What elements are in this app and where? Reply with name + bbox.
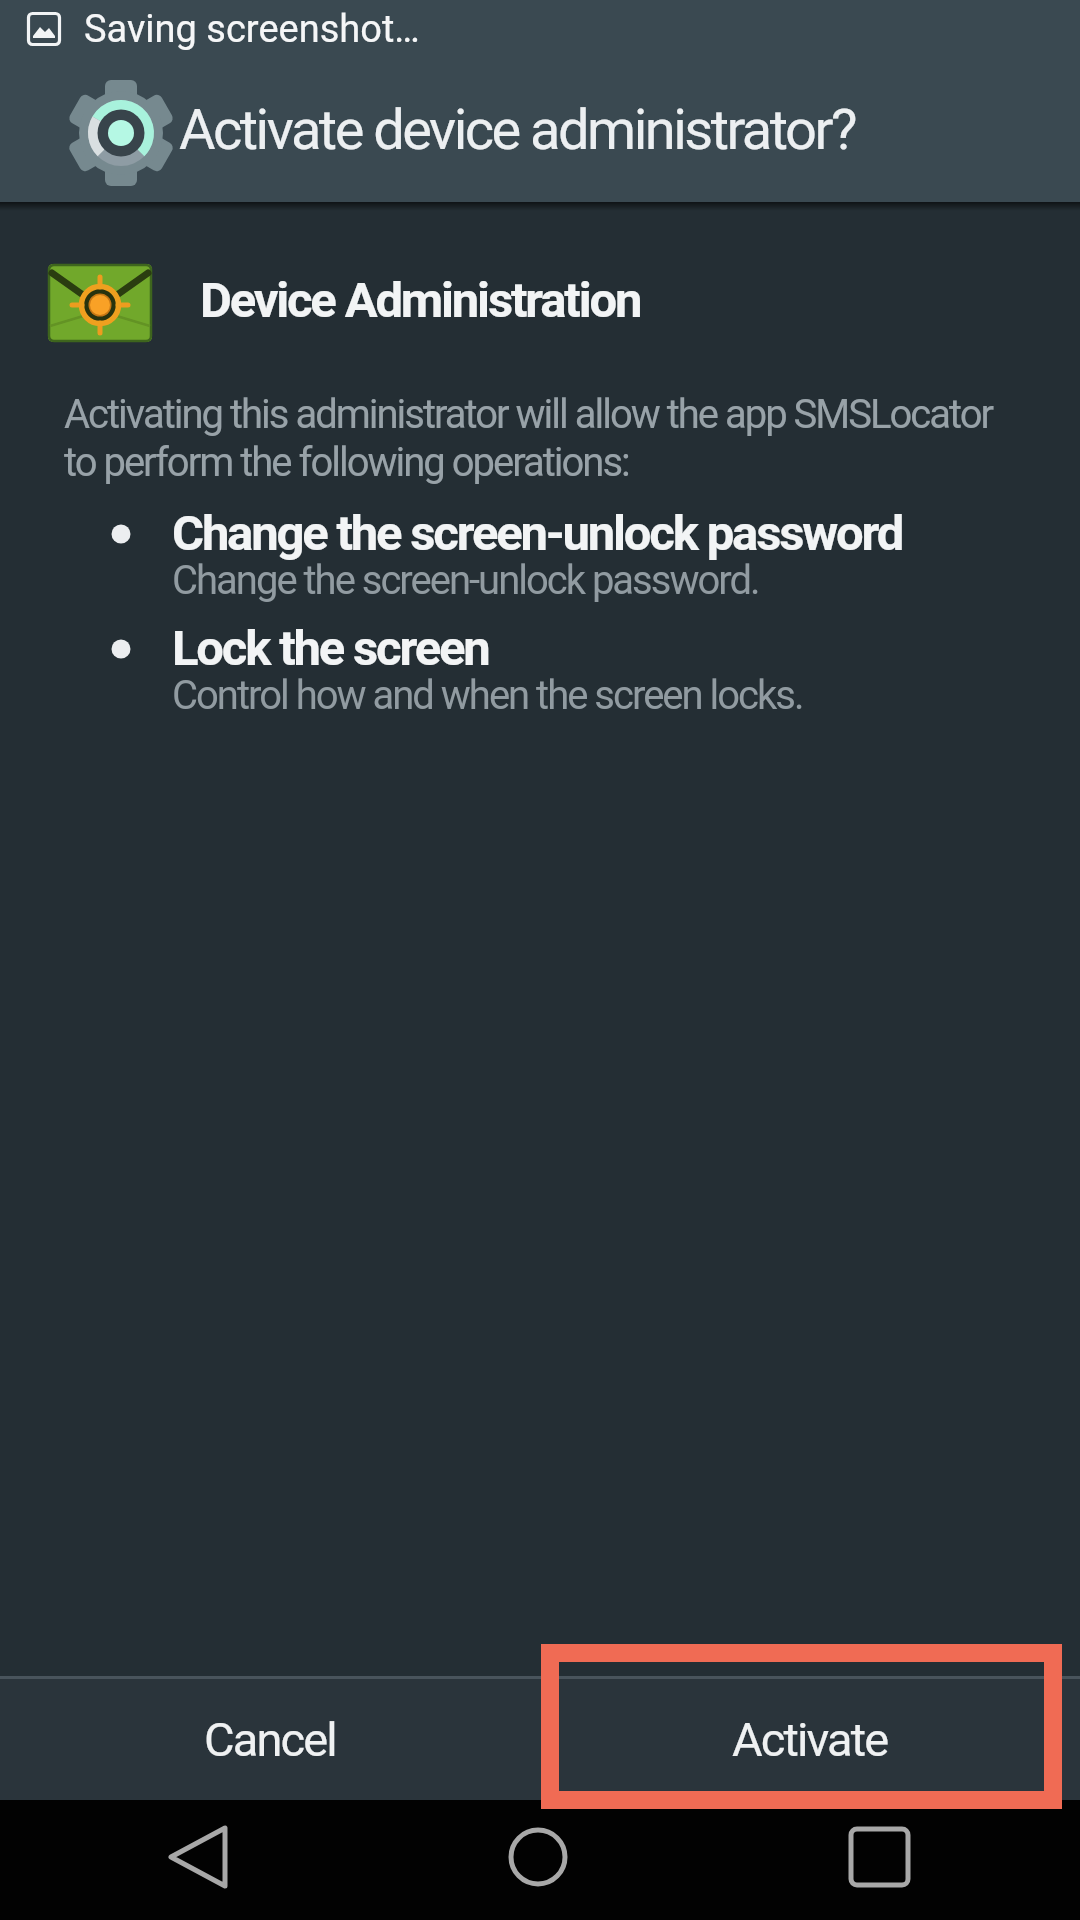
button[interactable]: Activate [540, 1679, 1080, 1800]
staticText: Activate [732, 1712, 888, 1767]
button[interactable]: Cancel [0, 1679, 540, 1800]
button[interactable] [720, 1800, 1080, 1920]
staticText: Activating this administrator will allow… [64, 391, 993, 486]
staticText: Change the screen-unlock password [172, 505, 903, 562]
staticText: Device Administration [200, 272, 641, 329]
button[interactable] [360, 1800, 720, 1920]
staticText: Control how and when the screen locks. [172, 672, 803, 719]
staticText: Cancel [204, 1712, 336, 1767]
staticText: Activate device administrator? [179, 97, 855, 163]
staticText: Saving screenshot… [84, 7, 420, 52]
button[interactable] [0, 1800, 360, 1920]
staticText: Change the screen-unlock password. [172, 557, 759, 604]
staticText: Lock the screen [172, 620, 489, 677]
